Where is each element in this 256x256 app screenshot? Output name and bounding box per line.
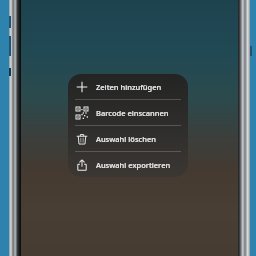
staticText: Zeiten hinzufügen <box>96 82 162 92</box>
staticText: Barcode einscannen <box>96 108 169 118</box>
button[interactable]: Auswahl exportieren <box>68 152 188 177</box>
button[interactable]: Zeiten hinzufügen <box>68 74 188 99</box>
staticText: Auswahl löschen <box>96 134 156 144</box>
staticText: Auswahl exportieren <box>96 160 171 170</box>
button[interactable]: Barcode einscannen <box>68 100 188 125</box>
button[interactable]: Auswahl löschen <box>68 126 188 151</box>
